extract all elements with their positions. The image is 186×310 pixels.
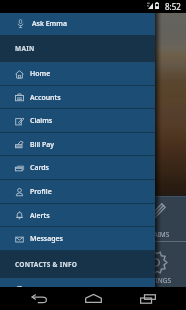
staticText: SETTINGS [141,276,171,285]
button[interactable]: Profile [0,180,155,204]
button[interactable]: Claims [0,109,155,133]
button[interactable]: Alerts [0,204,155,227]
button[interactable] [0,278,155,302]
staticText: Home [30,69,51,79]
staticText: Messages [30,234,64,244]
button[interactable]: Messages [0,227,155,251]
staticText: Profile [30,187,52,197]
button[interactable]: Bill Pay [0,133,155,156]
staticText: Accounts [30,93,61,103]
button[interactable]: Accounts [0,86,155,109]
button[interactable]: Recent apps [131,287,165,310]
staticText: Ask Emma [32,19,67,29]
staticText: 8:52 [165,1,181,12]
staticText: Alerts [30,211,50,221]
staticText: Claims [30,116,53,126]
button[interactable]: Ask Emma [0,12,155,35]
button[interactable]: Back [22,287,56,310]
staticText: CONTACTS & INFO [15,260,78,269]
button[interactable]: Home [76,287,110,310]
button[interactable]: Cards [0,156,155,180]
staticText: Cards [30,163,50,173]
staticText: Bill Pay [30,140,55,150]
button[interactable]: Home [0,62,155,86]
staticText: CLAIMS [146,230,170,239]
staticText: MAIN [15,44,35,53]
